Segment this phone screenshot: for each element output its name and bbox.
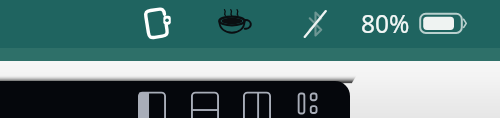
button[interactable]: Split horizontal <box>191 92 219 118</box>
button[interactable]: Layout grid <box>297 92 318 115</box>
button[interactable]: Device <box>145 8 173 38</box>
button[interactable]: Split vertical <box>243 92 271 118</box>
button[interactable]: Bluetooth off <box>301 7 329 41</box>
button[interactable]: Split left <box>138 92 166 118</box>
staticText: 80% <box>361 7 410 40</box>
button[interactable]: Caffeine <box>217 8 253 36</box>
other: Battery 80 percent <box>418 12 470 36</box>
